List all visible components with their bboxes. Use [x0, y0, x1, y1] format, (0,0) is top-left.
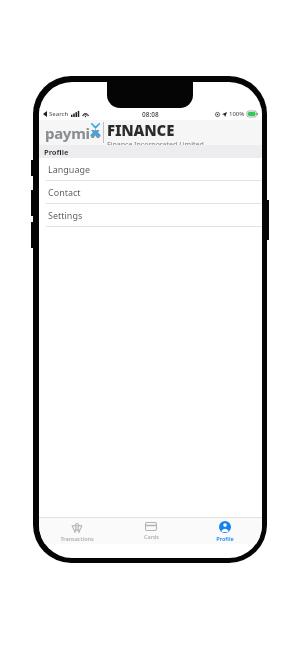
staticText: x [91, 122, 100, 142]
button[interactable]: Transactions [39, 518, 114, 544]
staticText: Profile [44, 147, 69, 157]
staticText: Search [49, 110, 69, 118]
button[interactable]: Profile [188, 518, 262, 544]
staticText: Profile [216, 535, 234, 542]
button[interactable]: Cards [114, 518, 188, 544]
staticText: 100% [229, 110, 245, 118]
staticText: Cards [144, 533, 159, 540]
button[interactable]: Settings [39, 204, 262, 227]
staticText: Transactions [60, 535, 94, 542]
staticText: Language [48, 163, 91, 175]
button[interactable]: Language [39, 158, 262, 181]
staticText: 08:08 [142, 110, 159, 119]
button[interactable]: Contact [39, 181, 262, 204]
staticText: paymi [45, 123, 90, 143]
staticText: Contact [48, 186, 81, 198]
staticText: Finance Incorporated Limited [107, 140, 204, 145]
staticText: FINANCE [107, 120, 175, 140]
staticText: Settings [48, 209, 83, 221]
